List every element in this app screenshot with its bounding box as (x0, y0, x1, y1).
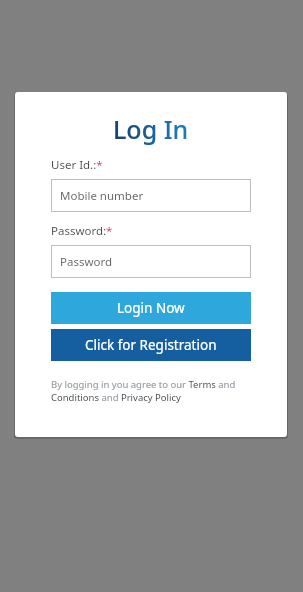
staticText: User Id.:* (51, 157, 103, 173)
button[interactable]: Password input (51, 245, 251, 278)
button[interactable]: User Id input (51, 179, 251, 212)
button[interactable]: Click for Registration (51, 329, 251, 361)
staticText: Mobile number (60, 188, 144, 204)
button[interactable]: Login Now (51, 292, 251, 324)
staticText: Log In (113, 112, 189, 146)
staticText: Password:* (51, 223, 113, 239)
staticText: By logging in you agree to our Terms and… (51, 378, 251, 404)
staticText: Click for Registration (85, 336, 217, 354)
staticText: Login Now (117, 299, 185, 317)
button[interactable]: By logging in you agree to our Terms and… (51, 378, 251, 404)
staticText: Password (60, 254, 113, 270)
